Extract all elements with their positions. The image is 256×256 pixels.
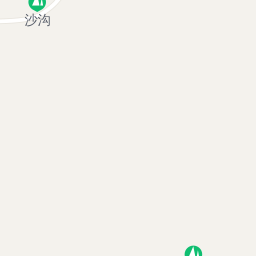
staticText: 沙沟 [24,12,50,28]
button[interactable]: 沙沟 mountain marker [28,0,46,12]
button[interactable]: Mountain marker [185,246,202,256]
